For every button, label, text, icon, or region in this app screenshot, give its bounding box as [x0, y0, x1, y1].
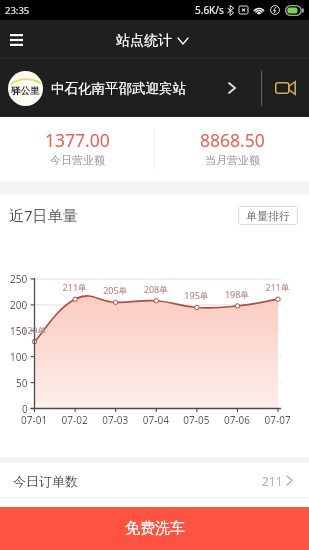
staticText: 1377.00: [45, 128, 110, 152]
staticText: 驿公里: [11, 85, 40, 97]
button[interactable]: 今日订单数: [0, 463, 309, 498]
button[interactable]: 站点统计: [116, 32, 188, 50]
staticText: 站点统计: [116, 32, 172, 50]
staticText: 中石化南平邵武迎宾站: [51, 80, 186, 97]
staticText: 免费洗车: [125, 519, 185, 538]
button[interactable]: 驿公里: [0, 59, 261, 117]
staticText: 今日订单数: [13, 473, 78, 489]
button[interactable]: Menu: [0, 20, 33, 59]
button[interactable]: 免费洗车: [0, 507, 309, 550]
button[interactable]: 8868.50: [155, 117, 309, 181]
staticText: 211: [262, 473, 283, 489]
staticText: 当月营业额: [205, 153, 260, 167]
staticText: 近7日单量: [9, 205, 78, 225]
button[interactable]: Camera: [262, 59, 309, 117]
button[interactable]: 1377.00: [0, 117, 154, 181]
staticText: 单量排行: [246, 209, 290, 223]
button[interactable]: 单量排行: [238, 206, 298, 225]
staticText: 5.6K/s: [195, 3, 224, 17]
staticText: 今日营业额: [50, 153, 105, 167]
staticText: 8868.50: [200, 128, 265, 152]
staticText: 23:35: [5, 4, 30, 17]
